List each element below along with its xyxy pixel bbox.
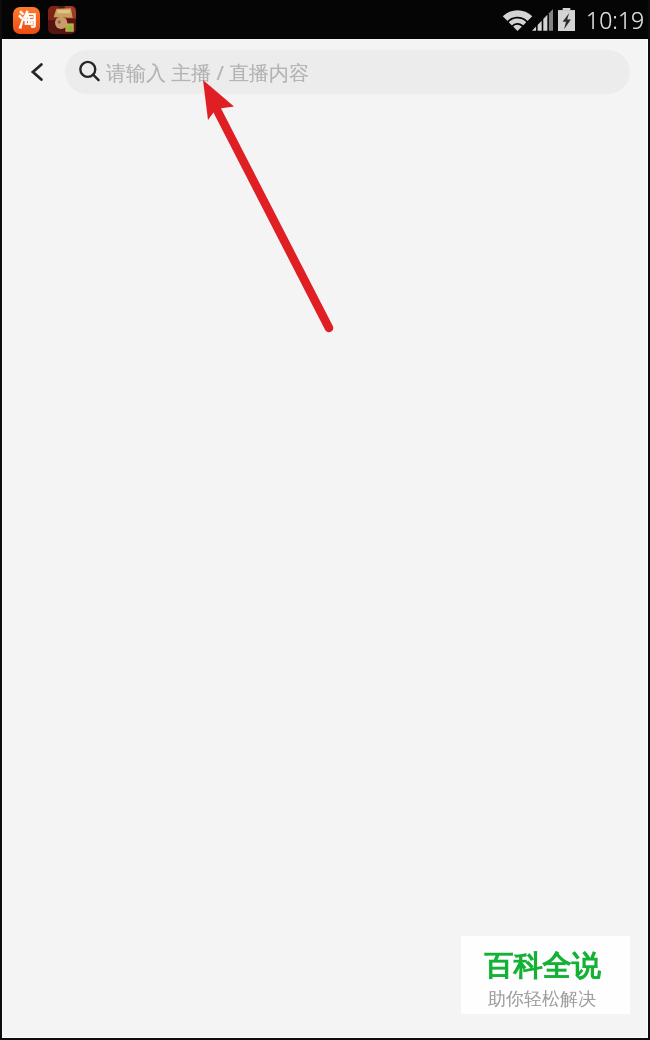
- staticText: 请输入 主播 / 直播内容: [106, 59, 310, 86]
- staticText: 淘: [18, 9, 36, 32]
- staticText: 百科全说: [484, 948, 600, 985]
- button[interactable]: 请输入 主播 / 直播内容: [65, 50, 630, 94]
- staticText: 10:19: [586, 4, 645, 35]
- button[interactable]: Back: [17, 53, 55, 91]
- staticText: 助你轻松解决: [488, 988, 596, 1011]
